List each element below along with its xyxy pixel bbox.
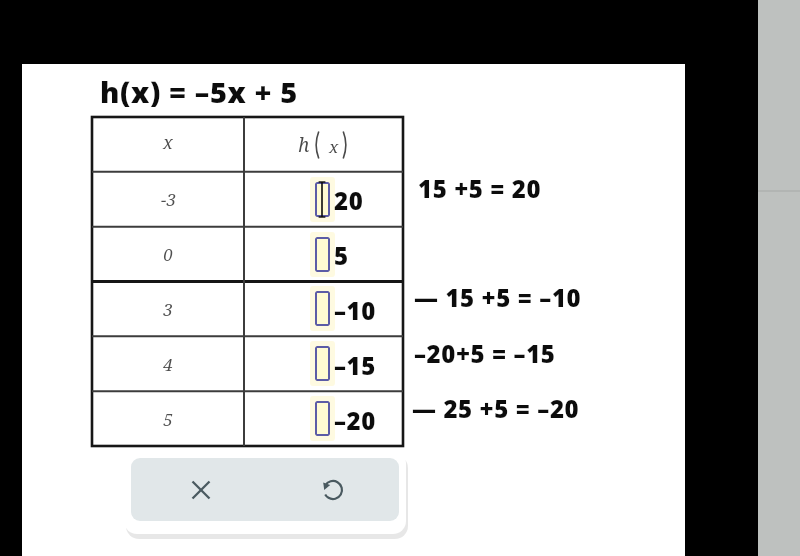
button[interactable]: Answer input [315, 237, 330, 272]
button[interactable]: Answer input [315, 182, 330, 217]
staticText: x [329, 135, 339, 158]
staticText: 20 [334, 184, 364, 217]
staticText: –20 [334, 404, 376, 437]
staticText: h [298, 132, 310, 158]
button[interactable]: Close [179, 468, 223, 512]
staticText: –15 [334, 349, 376, 382]
staticText: — 25 +5 = –20 [412, 392, 580, 425]
staticText: −3 [161, 188, 176, 211]
staticText: 5 [163, 408, 173, 431]
button[interactable]: Undo [311, 468, 355, 512]
staticText: x [163, 130, 173, 155]
button[interactable]: Answer input [315, 291, 330, 326]
staticText: –10 [334, 294, 376, 327]
staticText: h(x) = –5x + 5 [100, 72, 298, 111]
staticText: 5 [334, 239, 349, 272]
button[interactable]: Answer input [315, 346, 330, 381]
staticText: –20+5 = –15 [414, 337, 556, 370]
button[interactable]: Answer input [315, 401, 330, 436]
staticText: 15 +5 = 20 [418, 172, 542, 205]
staticText: 4 [163, 353, 173, 376]
staticText: 3 [163, 298, 173, 321]
staticText: 0 [163, 243, 173, 266]
staticText: — 15 +5 = –10 [414, 281, 582, 314]
